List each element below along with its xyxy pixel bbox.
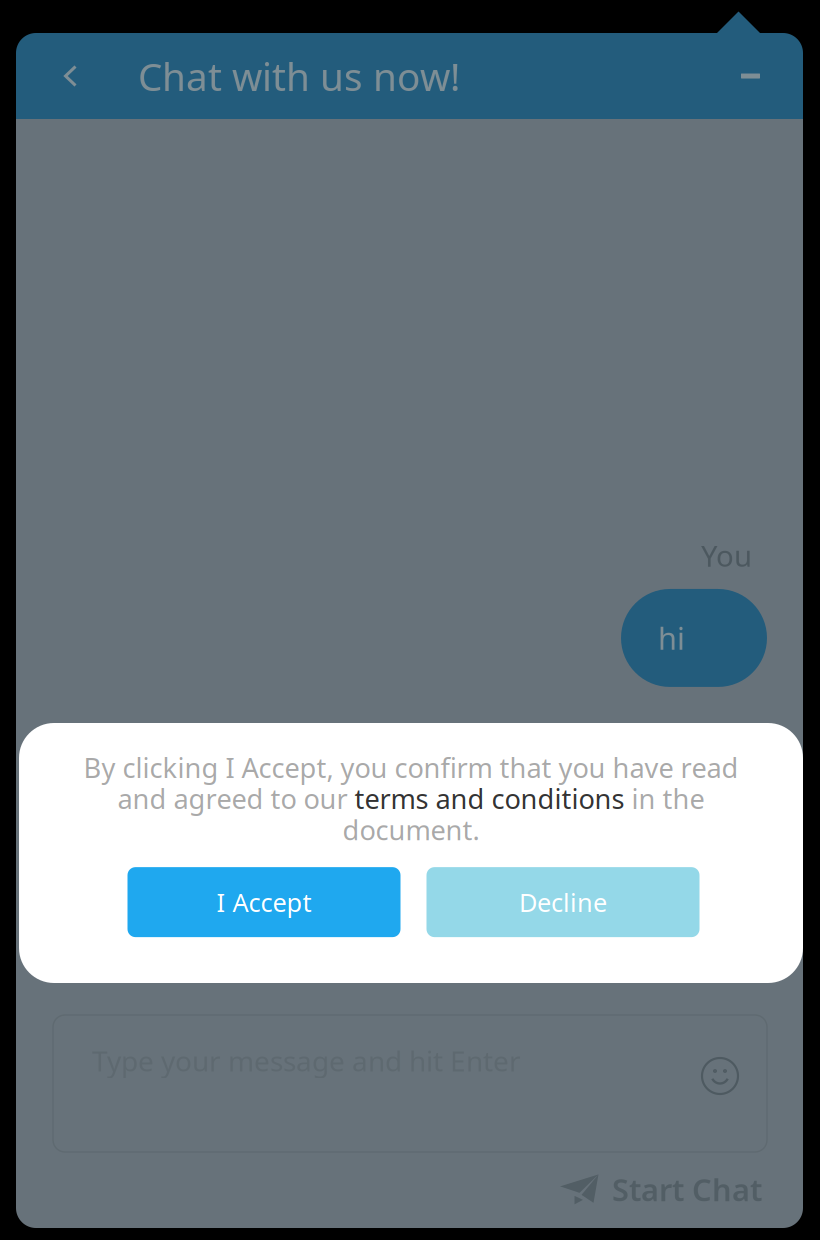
- staticText: Type your message and hit Enter: [92, 1042, 521, 1079]
- button[interactable]: I Accept: [127, 867, 400, 937]
- staticText: You: [701, 536, 752, 575]
- staticText: Chat with us now!: [138, 50, 460, 102]
- button[interactable]: Back: [16, 33, 125, 119]
- staticText: By clicking I Accept, you confirm that y…: [83, 749, 738, 786]
- button[interactable]: Minimize: [741, 33, 803, 119]
- staticText: document.: [342, 811, 479, 848]
- button[interactable]: Decline: [426, 867, 699, 937]
- staticText: in the: [624, 780, 704, 817]
- staticText: I Accept: [216, 885, 311, 919]
- button[interactable]: Emoji: [697, 1053, 743, 1099]
- staticText: Start Chat: [612, 1169, 762, 1210]
- staticText: hi: [658, 618, 685, 658]
- staticText: Decline: [519, 885, 607, 919]
- staticText: terms and conditions: [354, 780, 624, 817]
- button[interactable]: Start Chat: [559, 1161, 803, 1218]
- staticText: and agreed to our: [117, 780, 354, 817]
